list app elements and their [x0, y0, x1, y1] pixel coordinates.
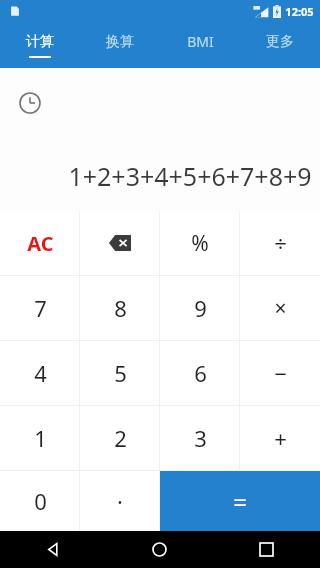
button[interactable]: 5 — [80, 341, 160, 405]
staticText: % — [191, 229, 209, 258]
button[interactable]: 0 — [0, 471, 80, 531]
button[interactable]: 9 — [160, 276, 240, 340]
button[interactable]: − — [240, 341, 320, 405]
button[interactable]: 6 — [160, 341, 240, 405]
staticText: AC — [27, 230, 54, 257]
button[interactable]: ÷ — [240, 211, 320, 275]
staticText: 4 — [34, 358, 47, 388]
staticText: 1 — [34, 423, 47, 453]
staticText: 9 — [194, 293, 207, 323]
staticText: 3 — [194, 423, 207, 453]
staticText: · — [117, 486, 123, 516]
button[interactable]: % — [160, 211, 240, 275]
button[interactable]: 1 — [0, 406, 80, 470]
staticText: 12:05 — [285, 4, 314, 19]
staticText: 5 — [114, 358, 127, 388]
button[interactable]: 计算 — [0, 22, 80, 68]
button[interactable]: 8 — [80, 276, 160, 340]
staticText: 更多 — [266, 33, 294, 51]
other: Backspace — [109, 235, 131, 251]
button[interactable]: Home — [106, 531, 213, 568]
button[interactable]: 7 — [0, 276, 80, 340]
staticText: 换算 — [106, 33, 134, 51]
button[interactable]: Recents — [213, 531, 320, 568]
staticText: + — [274, 423, 287, 453]
staticText: 6 — [194, 358, 207, 388]
button[interactable]: AC — [0, 211, 80, 275]
button[interactable]: 2 — [80, 406, 160, 470]
button[interactable]: History — [14, 87, 46, 119]
staticText: = — [233, 485, 247, 518]
button[interactable]: 4 — [0, 341, 80, 405]
button[interactable]: = — [160, 471, 320, 531]
button[interactable]: × — [240, 276, 320, 340]
button[interactable]: 更多 — [240, 22, 320, 68]
staticText: BMI — [187, 32, 214, 51]
button[interactable]: BMI — [160, 22, 240, 68]
staticText: ÷ — [274, 228, 287, 258]
button[interactable]: 3 — [160, 406, 240, 470]
button[interactable]: + — [240, 406, 320, 470]
staticText: − — [274, 358, 287, 388]
staticText: 8 — [114, 293, 127, 323]
staticText: × — [274, 294, 287, 323]
staticText: 1+2+3+4+5+6+7+8+9 — [68, 159, 312, 193]
staticText: 0 — [34, 486, 47, 516]
button[interactable]: Back — [0, 531, 106, 568]
button[interactable]: Backspace — [80, 211, 160, 275]
staticText: 2 — [114, 423, 127, 453]
staticText: 计算 — [26, 33, 54, 51]
staticText: 7 — [34, 293, 47, 323]
button[interactable]: · — [80, 471, 160, 531]
button[interactable]: 换算 — [80, 22, 160, 68]
